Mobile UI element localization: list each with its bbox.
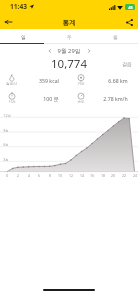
button[interactable]: 속도 <box>69 89 138 107</box>
staticText: 16 <box>89 173 95 178</box>
staticText: 시간 <box>8 100 16 105</box>
staticText: 10,774 <box>51 56 87 71</box>
staticText: 11:43 <box>10 2 27 11</box>
staticText: 6천 <box>3 143 9 147</box>
button[interactable]: Previous day <box>45 46 54 55</box>
staticText: 3천 <box>3 158 9 162</box>
staticText: 10 <box>57 173 63 178</box>
staticText: 주 <box>67 34 72 40</box>
staticText: 18 <box>100 173 106 178</box>
staticText: 8 <box>47 173 53 178</box>
button[interactable]: 주 <box>46 29 92 43</box>
staticText: 45 <box>128 5 133 10</box>
staticText: 6 <box>36 173 42 178</box>
button[interactable]: 월 <box>92 29 138 43</box>
staticText: 12 <box>68 173 74 178</box>
staticText: 6.68 km <box>108 77 128 84</box>
staticText: 1.2만 <box>3 114 11 118</box>
staticText: 속도 <box>77 100 85 105</box>
button[interactable]: Back <box>0 14 16 30</box>
staticText: 거리 <box>77 82 85 87</box>
button[interactable]: Share <box>121 14 137 30</box>
staticText: 통계 <box>62 19 76 27</box>
staticText: 칼로리 <box>6 82 17 87</box>
button[interactable]: 칼로리 <box>0 71 69 89</box>
staticText: 월 <box>113 34 118 40</box>
staticText: 걸음 <box>122 61 132 67</box>
staticText: 24 <box>132 173 138 178</box>
button[interactable]: 거리 <box>69 71 138 89</box>
staticText: 14 <box>79 173 85 178</box>
staticText: 4 <box>26 173 32 178</box>
staticText: 0 <box>4 173 10 178</box>
button[interactable]: 일 <box>0 29 46 43</box>
staticText: 20 <box>110 173 116 178</box>
staticText: 2 <box>15 173 21 178</box>
button[interactable]: 시간 <box>0 89 69 107</box>
staticText: 9천 <box>3 129 9 133</box>
staticText: 9월 29일 <box>57 47 81 55</box>
staticText: 100 분 <box>43 95 59 102</box>
staticText: 일 <box>21 34 26 40</box>
staticText: 22 <box>121 173 127 178</box>
button[interactable]: Next day <box>84 46 93 55</box>
staticText: 2.78 km/h <box>103 95 128 102</box>
staticText: 359 kcal <box>39 77 59 84</box>
